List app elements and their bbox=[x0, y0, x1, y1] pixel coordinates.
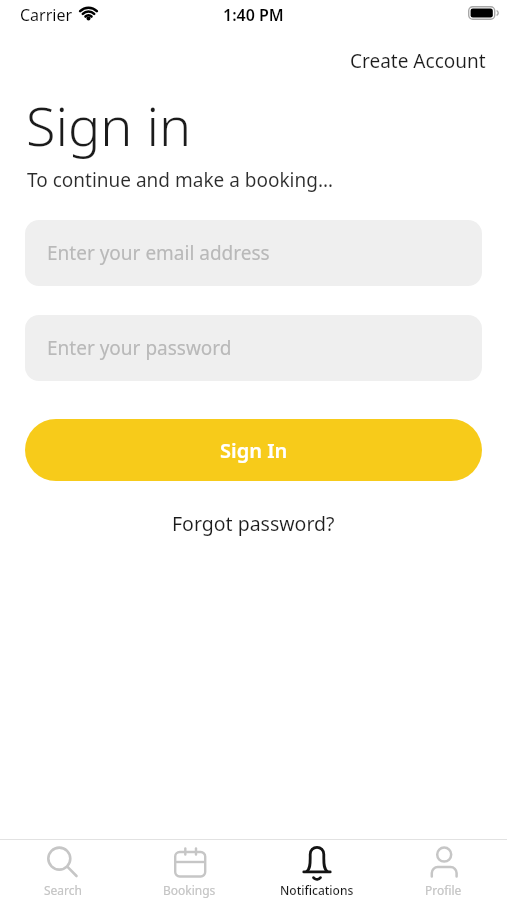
staticText: Enter your password bbox=[47, 335, 232, 361]
button[interactable]: Search bbox=[0, 840, 126, 900]
staticText: Notifications bbox=[280, 882, 354, 898]
staticText: Sign In bbox=[220, 437, 288, 464]
button[interactable]: Enter your password bbox=[25, 315, 482, 381]
staticText: 1:40 PM bbox=[223, 4, 284, 26]
staticText: Enter your email address bbox=[47, 240, 270, 266]
button[interactable]: Forgot password? bbox=[172, 510, 335, 537]
staticText: Profile bbox=[425, 882, 462, 898]
staticText: Bookings bbox=[163, 882, 216, 898]
staticText: Sign in bbox=[26, 88, 192, 162]
button[interactable]: Enter your email address bbox=[25, 220, 482, 286]
button[interactable]: Notifications bbox=[253, 840, 380, 900]
staticText: Carrier bbox=[20, 4, 73, 26]
button[interactable]: Profile bbox=[380, 840, 507, 900]
button[interactable]: Create Account bbox=[350, 48, 486, 74]
button[interactable]: Sign In bbox=[25, 419, 482, 481]
staticText: Search bbox=[44, 882, 82, 898]
button[interactable]: Bookings bbox=[126, 840, 253, 900]
staticText: To continue and make a booking… bbox=[27, 167, 333, 193]
